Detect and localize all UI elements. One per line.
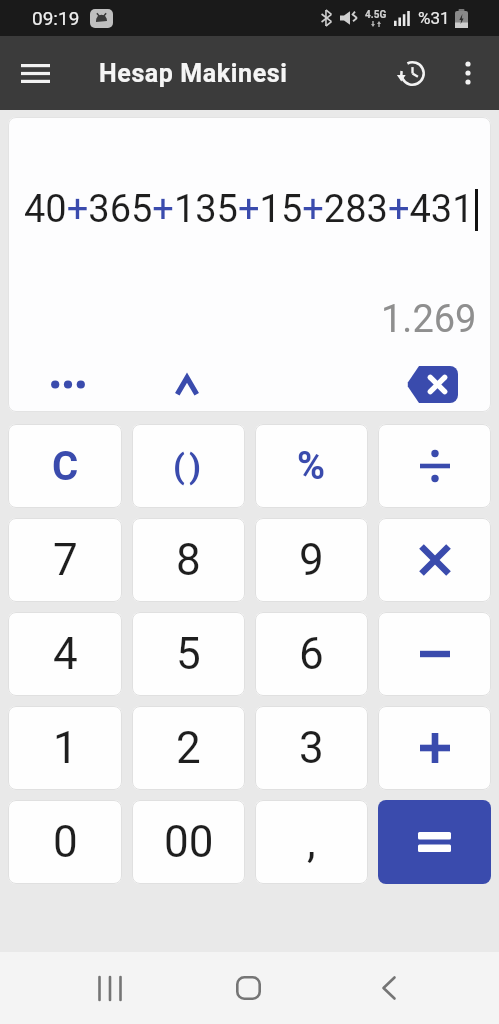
staticText: 40+365+135+15+283+431 <box>24 187 474 232</box>
button[interactable] <box>378 518 491 602</box>
staticText: , <box>307 816 316 868</box>
button[interactable]: 4 <box>8 612 122 696</box>
staticText: () <box>173 446 205 486</box>
button[interactable]: 0 <box>8 800 122 884</box>
staticText: %31 <box>418 8 450 28</box>
button[interactable]: % <box>255 424 368 508</box>
button[interactable]: , <box>255 800 368 884</box>
staticText: 4.5G <box>365 9 387 21</box>
staticText: 1.269 <box>381 297 477 342</box>
button[interactable] <box>13 51 57 95</box>
button[interactable]: 2 <box>132 706 245 790</box>
button[interactable]: 9 <box>255 518 368 602</box>
staticText: % <box>297 444 326 489</box>
staticText: 7 <box>53 534 78 586</box>
button[interactable] <box>378 612 491 696</box>
button[interactable] <box>378 800 491 884</box>
button[interactable]: () <box>132 424 245 508</box>
button[interactable] <box>160 367 214 401</box>
staticText: 9 <box>299 534 324 586</box>
staticText: 09:19 <box>32 7 80 29</box>
button[interactable]: 5 <box>132 612 245 696</box>
button[interactable]: 6 <box>255 612 368 696</box>
staticText: 5 <box>176 628 201 680</box>
button[interactable] <box>365 964 413 1012</box>
staticText: 0 <box>53 816 78 868</box>
staticText: Hesap Makinesi <box>99 59 288 88</box>
button[interactable] <box>86 964 134 1012</box>
button[interactable]: C <box>8 424 122 508</box>
button[interactable] <box>40 367 96 401</box>
staticText: 6 <box>299 628 324 680</box>
button[interactable] <box>389 51 433 95</box>
button[interactable] <box>378 706 491 790</box>
button[interactable]: 3 <box>255 706 368 790</box>
button[interactable]: 7 <box>8 518 122 602</box>
button[interactable]: 8 <box>132 518 245 602</box>
button[interactable] <box>224 964 272 1012</box>
button[interactable] <box>397 362 467 406</box>
button[interactable] <box>378 424 491 508</box>
staticText: 8 <box>176 534 201 586</box>
staticText: 4 <box>53 628 78 680</box>
button[interactable] <box>448 53 488 93</box>
staticText: 00 <box>164 816 214 868</box>
button[interactable]: 00 <box>132 800 245 884</box>
staticText: C <box>52 443 79 490</box>
staticText: 1 <box>53 722 78 774</box>
button[interactable]: 1 <box>8 706 122 790</box>
staticText: 3 <box>299 722 324 774</box>
staticText: 2 <box>176 722 201 774</box>
